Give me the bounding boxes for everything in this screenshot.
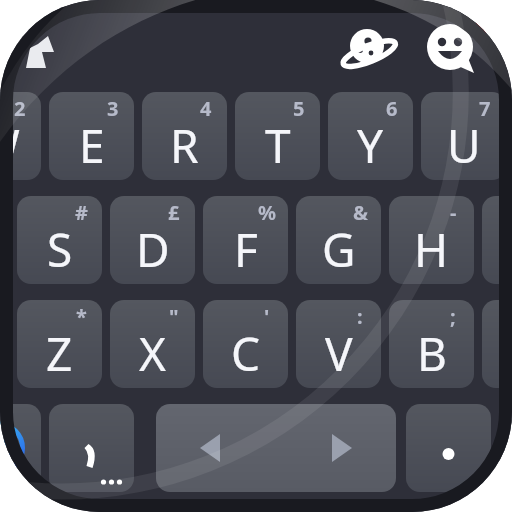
button[interactable]: T: [235, 92, 320, 180]
button[interactable]: E: [49, 92, 134, 180]
staticText: B: [417, 322, 447, 384]
staticText: 6: [386, 95, 398, 122]
staticText: R: [170, 114, 199, 176]
staticText: C: [231, 322, 261, 384]
button[interactable]: Emoji keyboard: [0, 404, 41, 492]
staticText: %: [258, 199, 277, 226]
staticText: X: [139, 322, 166, 384]
staticText: T: [265, 114, 291, 176]
staticText: *: [76, 303, 87, 330]
staticText: ;: [450, 303, 456, 330]
staticText: &: [353, 199, 368, 226]
button[interactable]: F: [203, 196, 288, 284]
button[interactable]: Y: [328, 92, 413, 180]
button[interactable]: Stickers: [338, 20, 396, 76]
staticText: 7: [479, 95, 491, 122]
staticText: 5: [293, 95, 305, 122]
staticText: Z: [46, 322, 73, 384]
staticText: ": [169, 303, 179, 330]
button[interactable]: Z: [17, 300, 102, 388]
staticText: E: [79, 114, 105, 176]
button[interactable]: G: [296, 196, 381, 284]
button[interactable]: R: [142, 92, 227, 180]
staticText: 3: [107, 95, 119, 122]
button[interactable]: J: [482, 196, 512, 284]
button[interactable]: Period: [406, 404, 491, 492]
button[interactable]: H: [389, 196, 474, 284]
staticText: F: [234, 218, 258, 280]
button[interactable]: W: [0, 92, 41, 180]
staticText: -: [450, 199, 457, 226]
staticText: D: [136, 218, 170, 280]
button[interactable]: D: [110, 196, 195, 284]
button[interactable]: S: [17, 196, 102, 284]
staticText: H: [414, 218, 449, 280]
staticText: G: [322, 218, 356, 280]
staticText: V: [325, 322, 353, 384]
button[interactable]: X: [110, 300, 195, 388]
staticText: 4: [200, 95, 212, 122]
staticText: £: [168, 199, 180, 226]
button[interactable]: Emoji: [422, 18, 482, 76]
button[interactable]: Comma: [49, 404, 134, 492]
staticText: :: [357, 303, 363, 330]
button[interactable]: Space, language EN: [156, 404, 396, 492]
staticText: W: [0, 114, 20, 176]
button[interactable]: C: [203, 300, 288, 388]
button[interactable]: Keyboard theme: [8, 18, 72, 76]
button[interactable]: B: [389, 300, 474, 388]
button[interactable]: V: [296, 300, 381, 388]
staticText: Y: [357, 114, 384, 176]
staticText: S: [47, 218, 73, 280]
button[interactable]: N: [482, 300, 512, 388]
staticText: U: [447, 114, 481, 176]
staticText: ': [264, 303, 270, 330]
button[interactable]: U: [421, 92, 506, 180]
staticText: 2: [14, 95, 26, 122]
staticText: #: [75, 199, 88, 226]
